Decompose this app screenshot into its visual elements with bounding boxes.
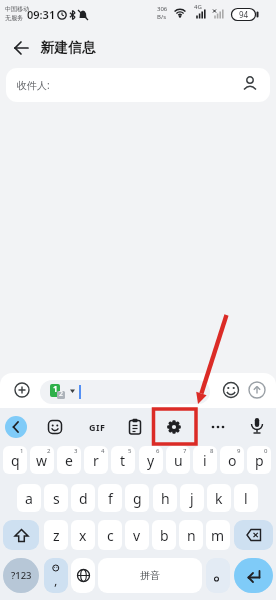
- staticText: 3: [74, 447, 78, 455]
- button[interactable]: [248, 381, 266, 399]
- staticText: 新建信息: [40, 39, 96, 56]
- button[interactable]: l: [234, 484, 258, 512]
- staticText: 4G: [194, 3, 202, 11]
- staticText: ?123: [11, 569, 32, 582]
- button[interactable]: h: [153, 484, 177, 512]
- staticText: n: [187, 526, 196, 545]
- button[interactable]: i: [193, 446, 217, 474]
- button[interactable]: p: [247, 446, 271, 474]
- button[interactable]: n: [179, 520, 203, 550]
- staticText: 收件人:: [17, 78, 50, 92]
- button[interactable]: [222, 381, 240, 399]
- staticText: g: [133, 489, 142, 508]
- staticText: r: [93, 451, 99, 470]
- staticText: 1: [53, 383, 58, 394]
- button[interactable]: ,: [44, 558, 68, 593]
- staticText: 0: [264, 447, 268, 455]
- button[interactable]: [249, 417, 265, 437]
- button[interactable]: ?123: [3, 558, 39, 593]
- button[interactable]: [12, 380, 32, 400]
- staticText: t: [120, 451, 126, 470]
- button[interactable]: [166, 419, 182, 435]
- staticText: ,: [54, 571, 58, 589]
- button[interactable]: q: [3, 446, 27, 474]
- button[interactable]: w: [30, 446, 54, 474]
- staticText: 306: [157, 5, 168, 13]
- button[interactable]: 拼音: [98, 558, 202, 593]
- staticText: y: [147, 451, 155, 470]
- button[interactable]: [8, 35, 34, 61]
- staticText: l: [244, 489, 248, 508]
- button[interactable]: s: [44, 484, 68, 512]
- button[interactable]: [3, 520, 39, 550]
- staticText: q: [11, 451, 20, 470]
- staticText: 8: [210, 447, 214, 455]
- staticText: 5: [128, 447, 132, 455]
- staticText: h: [161, 489, 170, 508]
- staticText: 2: [59, 389, 64, 399]
- button[interactable]: k: [207, 484, 231, 512]
- button[interactable]: v: [125, 520, 149, 550]
- staticText: v: [133, 526, 141, 545]
- button[interactable]: [234, 558, 273, 593]
- button[interactable]: o: [220, 446, 244, 474]
- button[interactable]: 1: [40, 380, 210, 404]
- staticText: c: [107, 526, 114, 545]
- staticText: m: [211, 526, 225, 545]
- staticText: 6: [156, 447, 160, 455]
- button[interactable]: [127, 418, 143, 436]
- staticText: 94: [239, 9, 249, 20]
- button[interactable]: u: [166, 446, 190, 474]
- button[interactable]: c: [98, 520, 122, 550]
- staticText: e: [65, 451, 73, 470]
- button[interactable]: y: [139, 446, 163, 474]
- staticText: x: [79, 526, 87, 545]
- staticText: p: [255, 451, 264, 470]
- staticText: j: [190, 489, 194, 508]
- staticText: f: [108, 489, 113, 508]
- staticText: z: [53, 526, 60, 545]
- staticText: 无服务: [5, 14, 23, 22]
- staticText: d: [79, 489, 88, 508]
- button[interactable]: 收件人:: [6, 68, 270, 102]
- staticText: u: [174, 451, 183, 470]
- staticText: 中国移动: [5, 5, 29, 13]
- staticText: s: [53, 489, 60, 508]
- button[interactable]: [234, 520, 273, 550]
- button[interactable]: d: [71, 484, 95, 512]
- button[interactable]: t: [111, 446, 135, 474]
- button[interactable]: j: [180, 484, 204, 512]
- staticText: o: [228, 451, 237, 470]
- staticText: B/s: [157, 13, 167, 21]
- button[interactable]: m: [206, 520, 230, 550]
- staticText: w: [36, 451, 48, 470]
- button[interactable]: GIF: [84, 417, 110, 437]
- button[interactable]: [71, 558, 95, 593]
- button[interactable]: [47, 419, 63, 435]
- staticText: 7: [183, 447, 187, 455]
- button[interactable]: f: [98, 484, 122, 512]
- staticText: a: [25, 489, 33, 508]
- button[interactable]: b: [152, 520, 176, 550]
- button[interactable]: [5, 416, 27, 438]
- button[interactable]: e: [57, 446, 81, 474]
- button[interactable]: r: [84, 446, 108, 474]
- staticText: 09:31: [27, 7, 56, 22]
- staticText: 2: [47, 447, 51, 455]
- staticText: k: [215, 489, 223, 508]
- button[interactable]: z: [44, 520, 68, 550]
- staticText: 9: [237, 447, 241, 455]
- button[interactable]: x: [71, 520, 95, 550]
- staticText: GIF: [89, 421, 106, 433]
- button[interactable]: g: [125, 484, 149, 512]
- button[interactable]: a: [17, 484, 41, 512]
- button[interactable]: [208, 419, 228, 435]
- button[interactable]: [206, 558, 230, 593]
- staticText: 4: [101, 447, 105, 455]
- staticText: i: [203, 451, 207, 470]
- staticText: 1: [20, 447, 24, 455]
- staticText: b: [160, 526, 169, 545]
- staticText: 拼音: [140, 569, 160, 582]
